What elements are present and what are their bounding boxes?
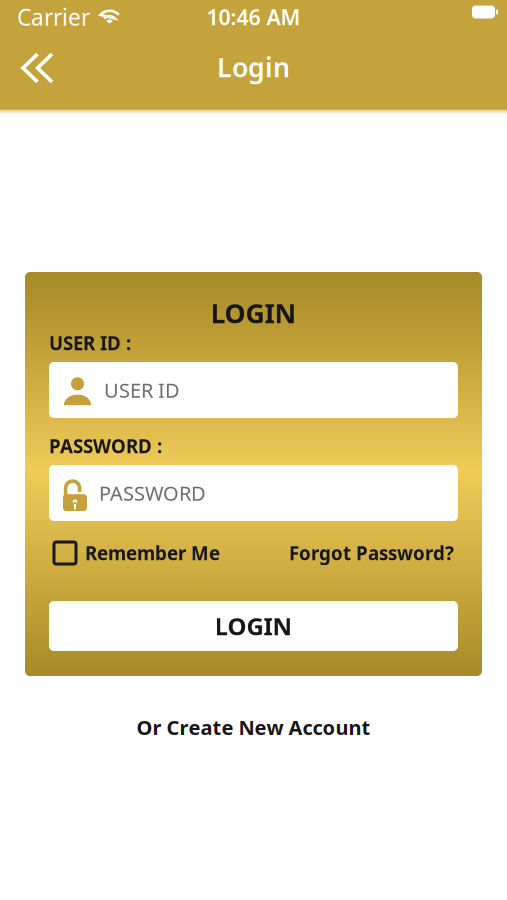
staticText: 10:46 AM	[206, 3, 300, 31]
staticText: Or Create New Account	[136, 714, 370, 741]
staticText: USER ID :	[49, 331, 131, 355]
button[interactable]: Back	[0, 45, 68, 96]
staticText: USER ID	[104, 377, 180, 403]
staticText: PASSWORD :	[49, 434, 162, 458]
button[interactable]: Forgot Password?	[289, 541, 458, 565]
staticText: Remember Me	[85, 541, 220, 565]
staticText: LOGIN	[214, 610, 292, 642]
staticText: LOGIN	[210, 295, 296, 331]
staticText: PASSWORD	[99, 480, 206, 506]
button[interactable]: LOGIN	[49, 601, 458, 651]
button[interactable]: Remember Me	[49, 541, 220, 565]
staticText: Login	[217, 49, 290, 85]
staticText: Carrier	[17, 2, 90, 32]
staticText: Forgot Password?	[289, 541, 454, 565]
